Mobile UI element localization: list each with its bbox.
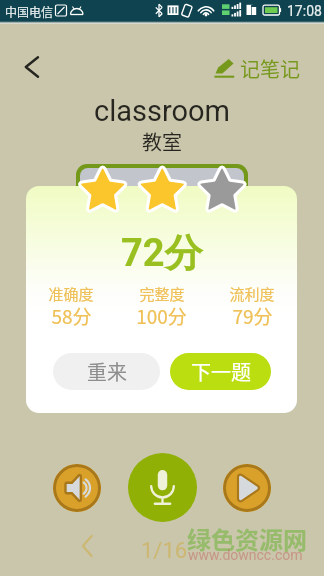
staticText: 教室 [142,127,182,156]
button[interactable]: Back [14,48,54,86]
staticText: 完整度 [139,283,185,305]
staticText: 58分 [51,302,92,330]
staticText: 准确度 [48,283,94,305]
staticText: 重来 [87,357,127,386]
staticText: 100分 [136,302,187,330]
staticText: 1/16 [141,538,188,564]
button[interactable]: 下一题 [170,353,271,390]
button[interactable]: Record [128,453,197,522]
staticText: 中国电信 [5,3,54,20]
staticText: classroom [94,94,230,128]
button[interactable]: Play word audio [53,464,101,512]
staticText: 79分 [232,302,273,330]
button[interactable]: 记笔记 [214,54,300,82]
staticText: 下一题 [191,357,251,386]
staticText: 17:08 [287,3,322,19]
button[interactable]: Play my recording [223,464,271,512]
staticText: 绿色资源网 [187,521,307,556]
staticText: www.downcc.com [188,547,303,563]
staticText: 记笔记 [240,54,300,82]
staticText: 72分 [121,229,203,277]
staticText: 流利度 [229,283,275,305]
button[interactable]: 重来 [53,353,160,390]
button[interactable]: Previous [73,532,103,560]
